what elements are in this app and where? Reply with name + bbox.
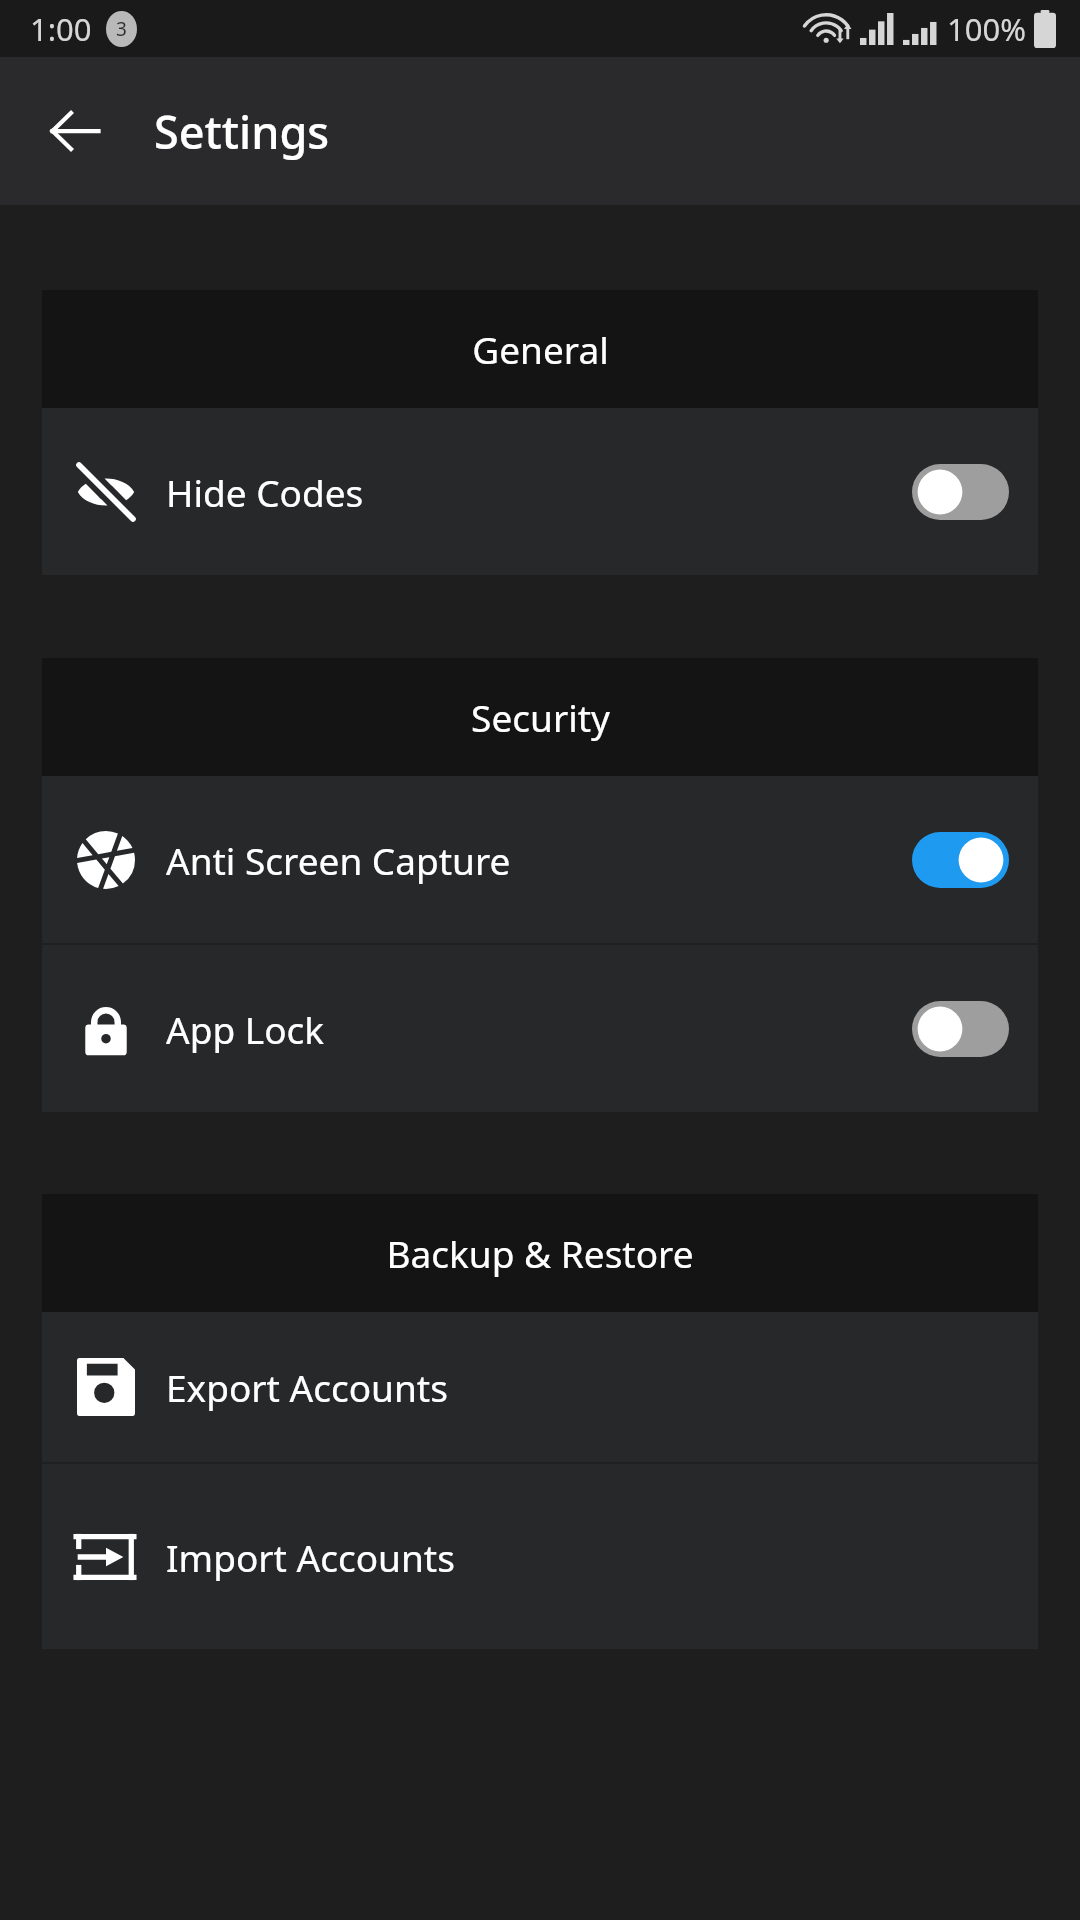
staticText: General — [472, 324, 609, 374]
staticText: Backup & Restore — [386, 1228, 694, 1278]
button[interactable]: Export Accounts — [42, 1312, 1038, 1462]
button[interactable]: On — [912, 832, 1009, 888]
button[interactable]: App Lock — [42, 945, 1038, 1112]
button[interactable]: Hide Codes — [42, 408, 1038, 575]
staticText: 100% — [947, 8, 1026, 50]
button[interactable]: Import Accounts — [42, 1464, 1038, 1649]
staticText: App Lock — [166, 1004, 325, 1054]
staticText: 3 — [116, 16, 127, 42]
staticText: Hide Codes — [166, 467, 364, 517]
staticText: Export Accounts — [166, 1362, 448, 1412]
staticText: Import Accounts — [166, 1532, 455, 1582]
button[interactable]: Off — [912, 1001, 1009, 1057]
staticText: Security — [471, 692, 610, 742]
button[interactable]: Off — [912, 464, 1009, 520]
staticText: Anti Screen Capture — [166, 835, 511, 885]
button[interactable]: Anti Screen Capture — [42, 776, 1038, 943]
staticText: Settings — [154, 101, 330, 162]
staticText: 1:00 — [30, 8, 92, 50]
button[interactable]: Back — [34, 90, 116, 172]
